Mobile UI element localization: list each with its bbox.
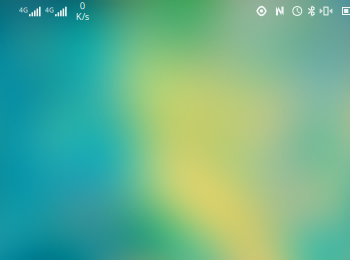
staticText: 4G [45,5,54,14]
staticText: 0 [80,0,85,12]
staticText: K/s [76,10,89,23]
staticText: 4G [19,5,28,14]
